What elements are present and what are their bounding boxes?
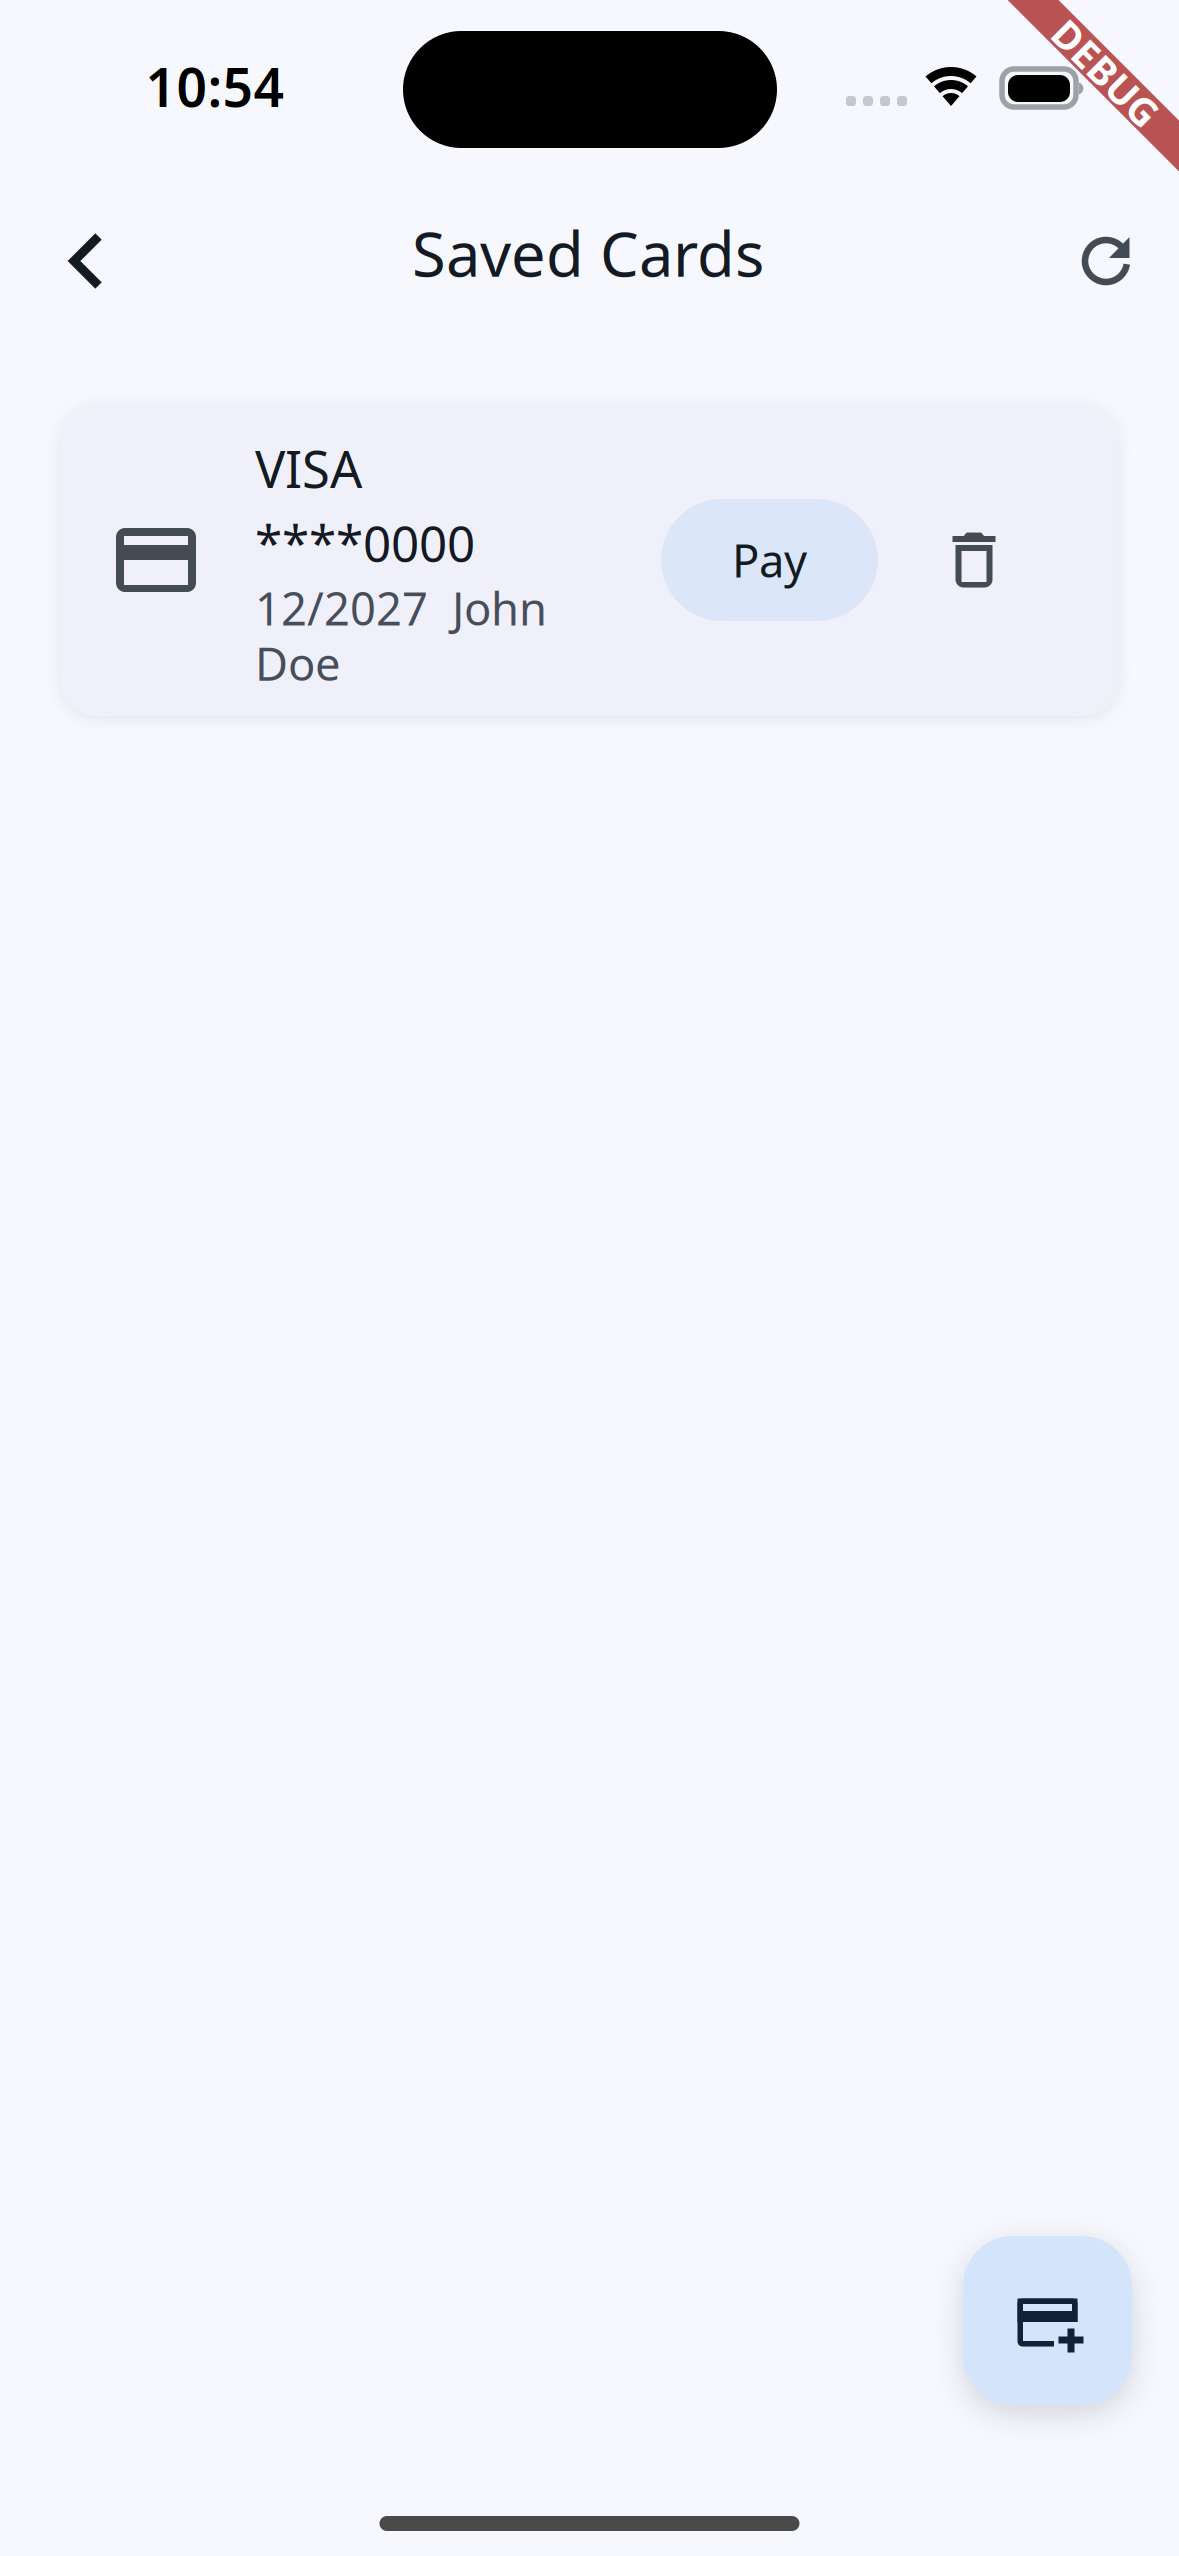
staticText: Pay [732,530,807,590]
staticText: 12/2027 John Doe [255,578,547,693]
staticText: DEBUG [1039,47,1172,99]
staticText: Saved Cards [412,212,764,294]
staticText: VISA [255,435,362,502]
staticText: ****0000 [255,510,475,575]
button[interactable]: Delete card [914,500,1034,620]
button[interactable]: Pay [661,499,878,621]
button[interactable]: Refresh [1051,206,1161,316]
button[interactable]: Back [31,206,141,316]
button[interactable]: Add card [963,2236,1132,2405]
staticText: 10:54 [145,51,284,122]
